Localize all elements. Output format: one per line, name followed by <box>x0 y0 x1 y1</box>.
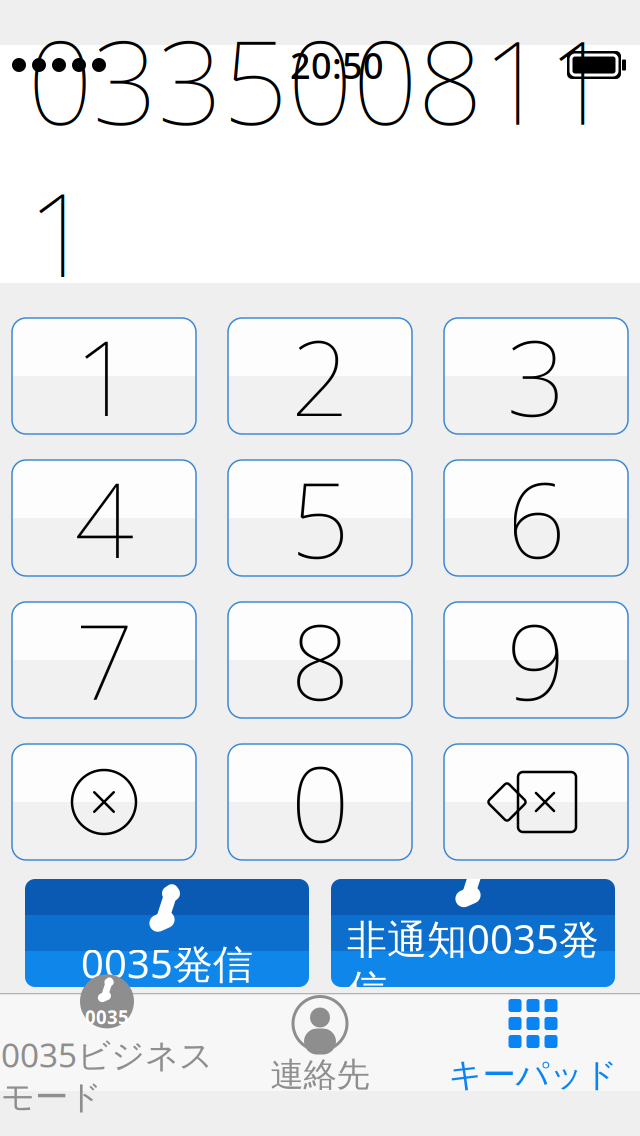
button[interactable]: 0035 <box>0 1001 213 1091</box>
button[interactable]: 7 <box>12 602 196 718</box>
staticText: 3 <box>506 307 565 445</box>
button[interactable]: 非通知0035発信 <box>331 879 615 987</box>
staticText: 8 <box>290 591 349 729</box>
button[interactable]: 4 <box>12 460 196 576</box>
staticText: 0035発信 <box>81 936 253 989</box>
staticText: NTTコミュニケーションズ <box>71 309 568 364</box>
button[interactable]: 8 <box>228 602 412 718</box>
button[interactable]: 0035発信 <box>25 879 309 987</box>
button[interactable]: 5 <box>228 460 412 576</box>
button[interactable]: 9 <box>444 602 628 718</box>
staticText: 1 <box>74 307 133 445</box>
staticText: 6 <box>506 449 565 587</box>
staticText: 0035ビジネスモード <box>1 1032 213 1118</box>
staticText: 0335008111 <box>27 4 612 309</box>
staticText: 9 <box>506 591 565 729</box>
staticText: 5 <box>290 449 349 587</box>
button[interactable]: 3 <box>444 318 628 434</box>
staticText: 0035 <box>85 1005 129 1029</box>
staticText: 非通知0035発信 <box>347 912 599 1014</box>
staticText: 連絡先 <box>270 1054 369 1095</box>
button[interactable]: 削除 <box>444 744 628 860</box>
button[interactable]: 1 <box>12 318 196 434</box>
staticText: 2 <box>290 307 349 445</box>
staticText: 20:50 <box>290 41 384 89</box>
staticText: 0 <box>290 733 349 871</box>
button[interactable]: 0 <box>228 744 412 860</box>
staticText: キーパッド <box>448 1054 617 1095</box>
button[interactable]: 連絡先 <box>213 1001 426 1091</box>
button[interactable]: 2 <box>228 318 412 434</box>
button[interactable]: 6 <box>444 460 628 576</box>
button[interactable]: キーパッド <box>426 1001 639 1091</box>
button[interactable]: 全消去 <box>12 744 196 860</box>
staticText: 7 <box>74 591 133 729</box>
staticText: 4 <box>74 449 133 587</box>
